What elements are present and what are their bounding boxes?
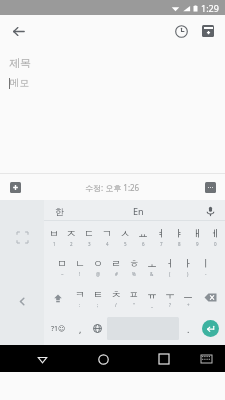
button[interactable]: Move keyboard left (11, 290, 33, 312)
staticText: 6 (142, 241, 145, 247)
button[interactable]: ㄴ (72, 253, 88, 281)
button[interactable]: ㅗ (144, 253, 160, 281)
button[interactable]: ㅐ (189, 223, 205, 251)
staticText: - (205, 271, 207, 277)
staticText: , (79, 323, 82, 335)
staticText: ㅐ (192, 227, 202, 240)
staticText: ㄹ (111, 257, 121, 270)
staticText: 7 (160, 241, 163, 247)
staticText: 2 (70, 241, 73, 247)
button[interactable]: ㅜ (162, 283, 178, 312)
staticText: . (187, 323, 190, 335)
button[interactable]: Hide keyboard (30, 347, 54, 371)
button[interactable]: ㅍ (126, 283, 142, 312)
staticText: ㅈ (66, 227, 76, 240)
staticText: ㅑ (174, 227, 184, 240)
button[interactable]: ㅂ (46, 223, 61, 251)
staticText: 수정: 오후 1:26 (85, 182, 140, 193)
staticText: : (79, 302, 81, 308)
button[interactable]: Back (5, 18, 31, 44)
button[interactable]: ㅛ (135, 223, 151, 251)
button[interactable]: Enter (198, 314, 223, 343)
staticText: ㅣ (201, 257, 211, 270)
button[interactable]: Reminder (168, 18, 194, 44)
staticText: _ (151, 302, 153, 308)
button[interactable]: Backspace (198, 283, 223, 312)
button[interactable]: Voice input (201, 202, 219, 220)
staticText: ㄷ (84, 227, 94, 240)
button[interactable]: ㅔ (207, 223, 223, 251)
button[interactable]: ㅠ (144, 283, 160, 312)
button[interactable]: ㅈ (63, 223, 79, 251)
button[interactable]: ㅋ (72, 283, 88, 312)
staticText: ㅕ (156, 227, 166, 240)
staticText: ~ (61, 271, 64, 277)
staticText: ㅛ (138, 227, 148, 240)
staticText: % (132, 271, 136, 277)
button[interactable]: ㄷ (81, 223, 97, 251)
button[interactable]: Archive (195, 18, 221, 44)
staticText: & (150, 271, 154, 277)
staticText: ㅇ (93, 257, 103, 270)
button[interactable]: ㅕ (153, 223, 169, 251)
staticText: 한 (55, 206, 64, 217)
staticText: / (115, 302, 117, 308)
staticText: # (115, 271, 118, 277)
button[interactable]: Resize keyboard (11, 226, 33, 248)
staticText: ?1☺ (51, 324, 66, 334)
button[interactable]: ㅑ (171, 223, 187, 251)
button[interactable]: Add (5, 177, 25, 197)
staticText: 4 (106, 241, 109, 247)
button[interactable]: ㅎ (126, 253, 142, 281)
staticText: 메모 (10, 77, 29, 89)
staticText: ( (169, 271, 171, 277)
button[interactable]: Shift (46, 283, 70, 312)
staticText: ㅎ (129, 257, 139, 270)
button[interactable]: Recent apps (152, 347, 176, 371)
staticText: ! (79, 271, 81, 277)
button[interactable]: , (73, 314, 88, 343)
staticText: ㅍ (129, 288, 139, 301)
staticText: ) (187, 271, 189, 277)
button[interactable]: Korean input mode (50, 202, 68, 220)
button[interactable]: ㅓ (162, 253, 178, 281)
staticText: ㅔ (210, 227, 220, 240)
button[interactable]: ㅁ (54, 253, 70, 281)
staticText: ㅅ (120, 227, 130, 240)
staticText: ㅗ (147, 257, 157, 270)
staticText: ㅡ (183, 288, 193, 301)
staticText: ㄱ (102, 227, 112, 240)
button[interactable]: ㅏ (180, 253, 196, 281)
staticText: ? (169, 302, 171, 308)
button[interactable]: . (181, 314, 196, 343)
staticText: 0 (214, 241, 217, 247)
staticText: ㄴ (75, 257, 85, 270)
button[interactable]: ?1☺ (46, 314, 71, 343)
button[interactable]: ㅇ (90, 253, 106, 281)
staticText: @ (96, 271, 101, 277)
staticText: 1:29 (201, 2, 219, 14)
button[interactable]: Change keyboard language (90, 314, 105, 343)
button[interactable]: ㅊ (108, 283, 124, 312)
button[interactable]: ㅣ (198, 253, 214, 281)
staticText: ; (97, 302, 99, 308)
button[interactable]: ㄱ (99, 223, 115, 251)
staticText: " (133, 302, 135, 308)
button[interactable]: ㅡ (180, 283, 196, 312)
button[interactable]: ㄹ (108, 253, 124, 281)
button[interactable]: Keyboard indicator (196, 349, 216, 369)
button[interactable]: Home (91, 347, 115, 371)
button[interactable]: ㅌ (90, 283, 106, 312)
staticText: ㅜ (165, 288, 175, 301)
button[interactable]: More options (200, 177, 220, 197)
staticText: ㅂ (49, 227, 59, 240)
staticText: ㅠ (147, 288, 157, 301)
staticText: 9 (196, 241, 199, 247)
staticText: ㅊ (111, 288, 121, 301)
button[interactable]: ㅅ (117, 223, 133, 251)
staticText: + (187, 302, 190, 308)
staticText: En (133, 205, 144, 217)
button[interactable]: En (133, 205, 144, 217)
staticText: 5 (124, 241, 127, 247)
